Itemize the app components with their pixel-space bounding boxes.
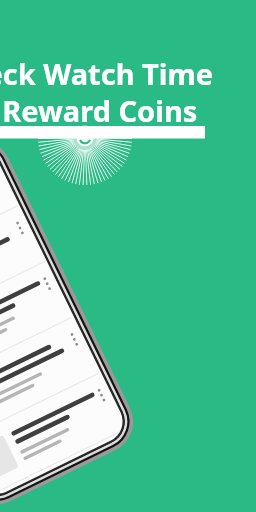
button[interactable]: Check Watch Time and Reward Coins (0, 0, 256, 512)
